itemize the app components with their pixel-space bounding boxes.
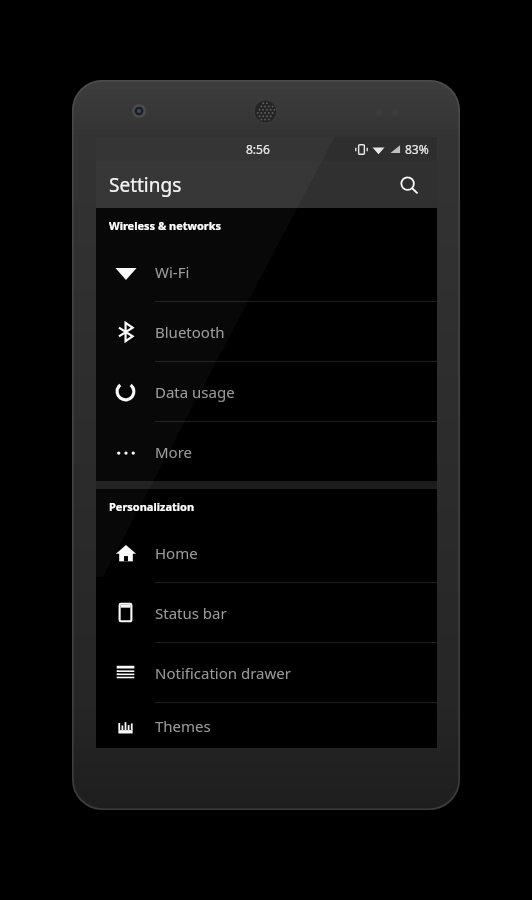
staticText: 83% [405, 141, 429, 157]
staticText: Wireless & networks [109, 218, 222, 233]
button[interactable]: Search [389, 165, 429, 205]
staticText: Status bar [155, 603, 227, 623]
staticText: Themes [155, 716, 211, 736]
button[interactable]: Themes [96, 703, 437, 748]
staticText: Wi-Fi [155, 262, 190, 282]
button[interactable]: Notification drawer [96, 643, 437, 702]
button[interactable]: Home [96, 523, 437, 582]
button[interactable]: Status bar [96, 583, 437, 642]
staticText: Data usage [155, 382, 235, 402]
button[interactable]: More [96, 422, 437, 481]
staticText: Home [155, 543, 198, 563]
staticText: Personalization [109, 499, 195, 514]
button[interactable]: Data usage [96, 362, 437, 421]
staticText: Settings [109, 172, 182, 198]
staticText: 8:56 [246, 141, 270, 157]
staticText: More [155, 442, 193, 462]
staticText: Bluetooth [155, 322, 225, 342]
button[interactable]: Bluetooth [96, 302, 437, 361]
button[interactable]: Wi-Fi [96, 242, 437, 301]
staticText: Notification drawer [155, 663, 291, 683]
